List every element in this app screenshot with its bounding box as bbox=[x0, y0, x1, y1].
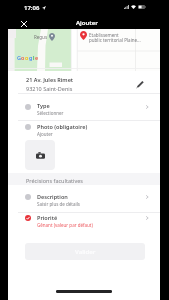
staticText: Regus bbox=[34, 34, 48, 40]
staticText: Saisir plus de détails bbox=[37, 201, 80, 207]
staticText: Valider bbox=[75, 248, 96, 256]
staticText: Etablissement public territorial Plaine.… bbox=[89, 32, 141, 44]
staticText: g bbox=[29, 54, 33, 61]
staticText: 93210 Saint-Denis bbox=[26, 85, 73, 92]
button[interactable]: Priorité bbox=[8, 212, 160, 235]
staticText: 17:06 bbox=[24, 4, 40, 12]
button[interactable]: Ajouter une photo bbox=[25, 140, 55, 170]
button[interactable]: Type bbox=[8, 93, 160, 119]
button[interactable]: Description bbox=[8, 185, 160, 212]
button[interactable]: Fermer bbox=[17, 17, 31, 31]
staticText: Priorité bbox=[37, 214, 58, 221]
staticText: Précisions facultatives bbox=[26, 177, 83, 184]
staticText: Ajouter bbox=[76, 19, 98, 27]
staticText: e bbox=[35, 54, 39, 61]
button[interactable]: 21 Av. Jules Rimet bbox=[8, 71, 160, 93]
staticText: o bbox=[21, 54, 25, 61]
staticText: G bbox=[17, 54, 21, 61]
staticText: 21 Av. Jules Rimet bbox=[26, 76, 74, 83]
staticText: l bbox=[33, 54, 35, 61]
staticText: Type bbox=[37, 102, 50, 109]
other: Modifier l'adresse bbox=[136, 80, 144, 88]
staticText: Ajouter bbox=[37, 131, 53, 137]
staticText: Description bbox=[37, 193, 68, 200]
button[interactable]: Photo (obligatoire) bbox=[8, 120, 160, 142]
staticText: Photo (obligatoire) bbox=[37, 123, 88, 130]
staticText: Gênant (valeur par défaut) bbox=[37, 222, 93, 228]
staticText: Sélectionner bbox=[37, 110, 64, 116]
staticText: o bbox=[25, 54, 29, 61]
